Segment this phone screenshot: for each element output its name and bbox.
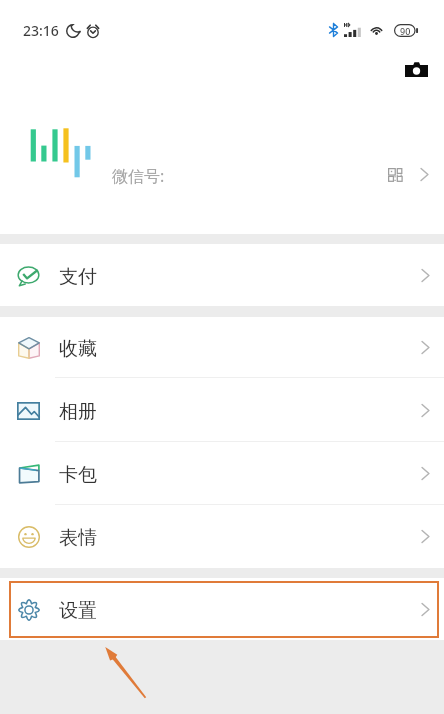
button[interactable]: 收藏 [0,317,444,378]
button[interactable]: 表情 [0,505,444,568]
button[interactable]: 设置 [0,578,444,640]
staticText: 微信号: [112,165,165,187]
button[interactable]: 相册 [0,378,444,442]
staticText: 相册 [59,400,97,424]
button[interactable]: Camera [400,53,432,85]
button[interactable]: My QR code [380,160,411,190]
staticText: 表情 [59,526,97,550]
staticText: 支付 [59,265,97,289]
staticText: 23:16 [23,21,59,40]
button[interactable]: 卡包 [0,442,444,505]
staticText: 设置 [59,599,97,623]
staticText: 90 [400,25,411,37]
staticText: 卡包 [59,463,97,487]
staticText: 收藏 [59,337,97,361]
button[interactable]: 支付 [0,244,444,306]
button[interactable]: 微信号: [0,118,444,234]
